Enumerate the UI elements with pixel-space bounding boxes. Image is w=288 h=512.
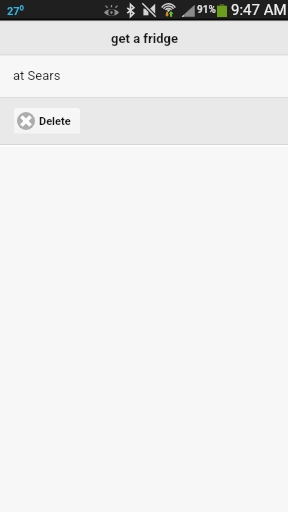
staticText: get a fridge xyxy=(111,31,178,46)
button[interactable]: Delete xyxy=(14,108,80,135)
staticText: 27 xyxy=(7,5,20,18)
staticText: 91% xyxy=(197,4,216,16)
staticText: 9:47 AM xyxy=(231,1,287,19)
staticText: Delete xyxy=(39,115,71,128)
staticText: at Sears xyxy=(13,68,61,83)
button[interactable]: at Sears xyxy=(0,56,288,97)
